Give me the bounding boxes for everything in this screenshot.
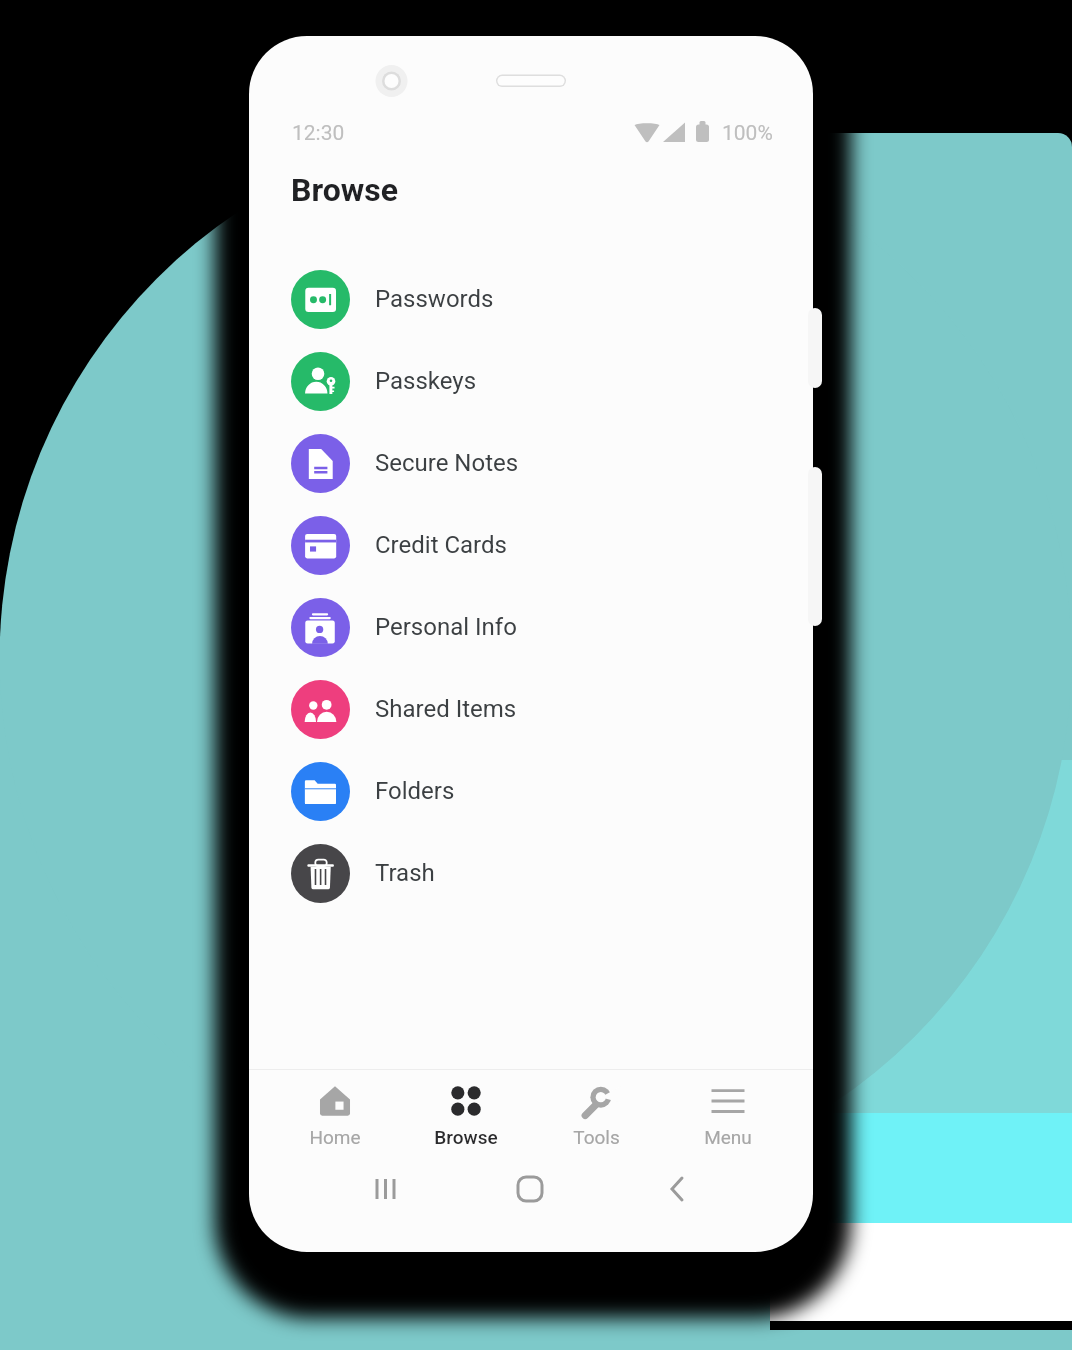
staticText: Menu xyxy=(704,1126,752,1148)
staticText: Personal Info xyxy=(375,613,517,641)
staticText: Browse xyxy=(291,171,398,209)
staticText: 12:30 xyxy=(292,121,345,146)
button[interactable]: Secure Notes xyxy=(249,422,813,504)
staticText: Passkeys xyxy=(375,367,477,395)
staticText: Credit Cards xyxy=(375,531,507,559)
staticText: Trash xyxy=(375,859,435,887)
button[interactable]: Tools xyxy=(531,1076,662,1148)
staticText: Secure Notes xyxy=(375,449,519,477)
staticText: Home xyxy=(309,1126,361,1148)
staticText: Tools xyxy=(573,1126,620,1148)
button[interactable]: Credit Cards xyxy=(249,504,813,586)
button[interactable]: Folders xyxy=(249,750,813,832)
button[interactable]: Home xyxy=(269,1076,400,1148)
button[interactable]: Passwords xyxy=(249,258,813,340)
staticText: Folders xyxy=(375,777,455,805)
staticText: Passwords xyxy=(375,285,494,313)
button[interactable]: Menu xyxy=(662,1076,793,1148)
staticText: Shared Items xyxy=(375,695,517,723)
button[interactable]: Trash xyxy=(249,832,813,914)
staticText: Browse xyxy=(434,1126,498,1148)
button[interactable]: Shared Items xyxy=(249,668,813,750)
button[interactable]: Passkeys xyxy=(249,340,813,422)
button[interactable]: Personal Info xyxy=(249,586,813,668)
staticText: 100% xyxy=(722,121,773,146)
button[interactable]: Browse xyxy=(400,1076,531,1148)
